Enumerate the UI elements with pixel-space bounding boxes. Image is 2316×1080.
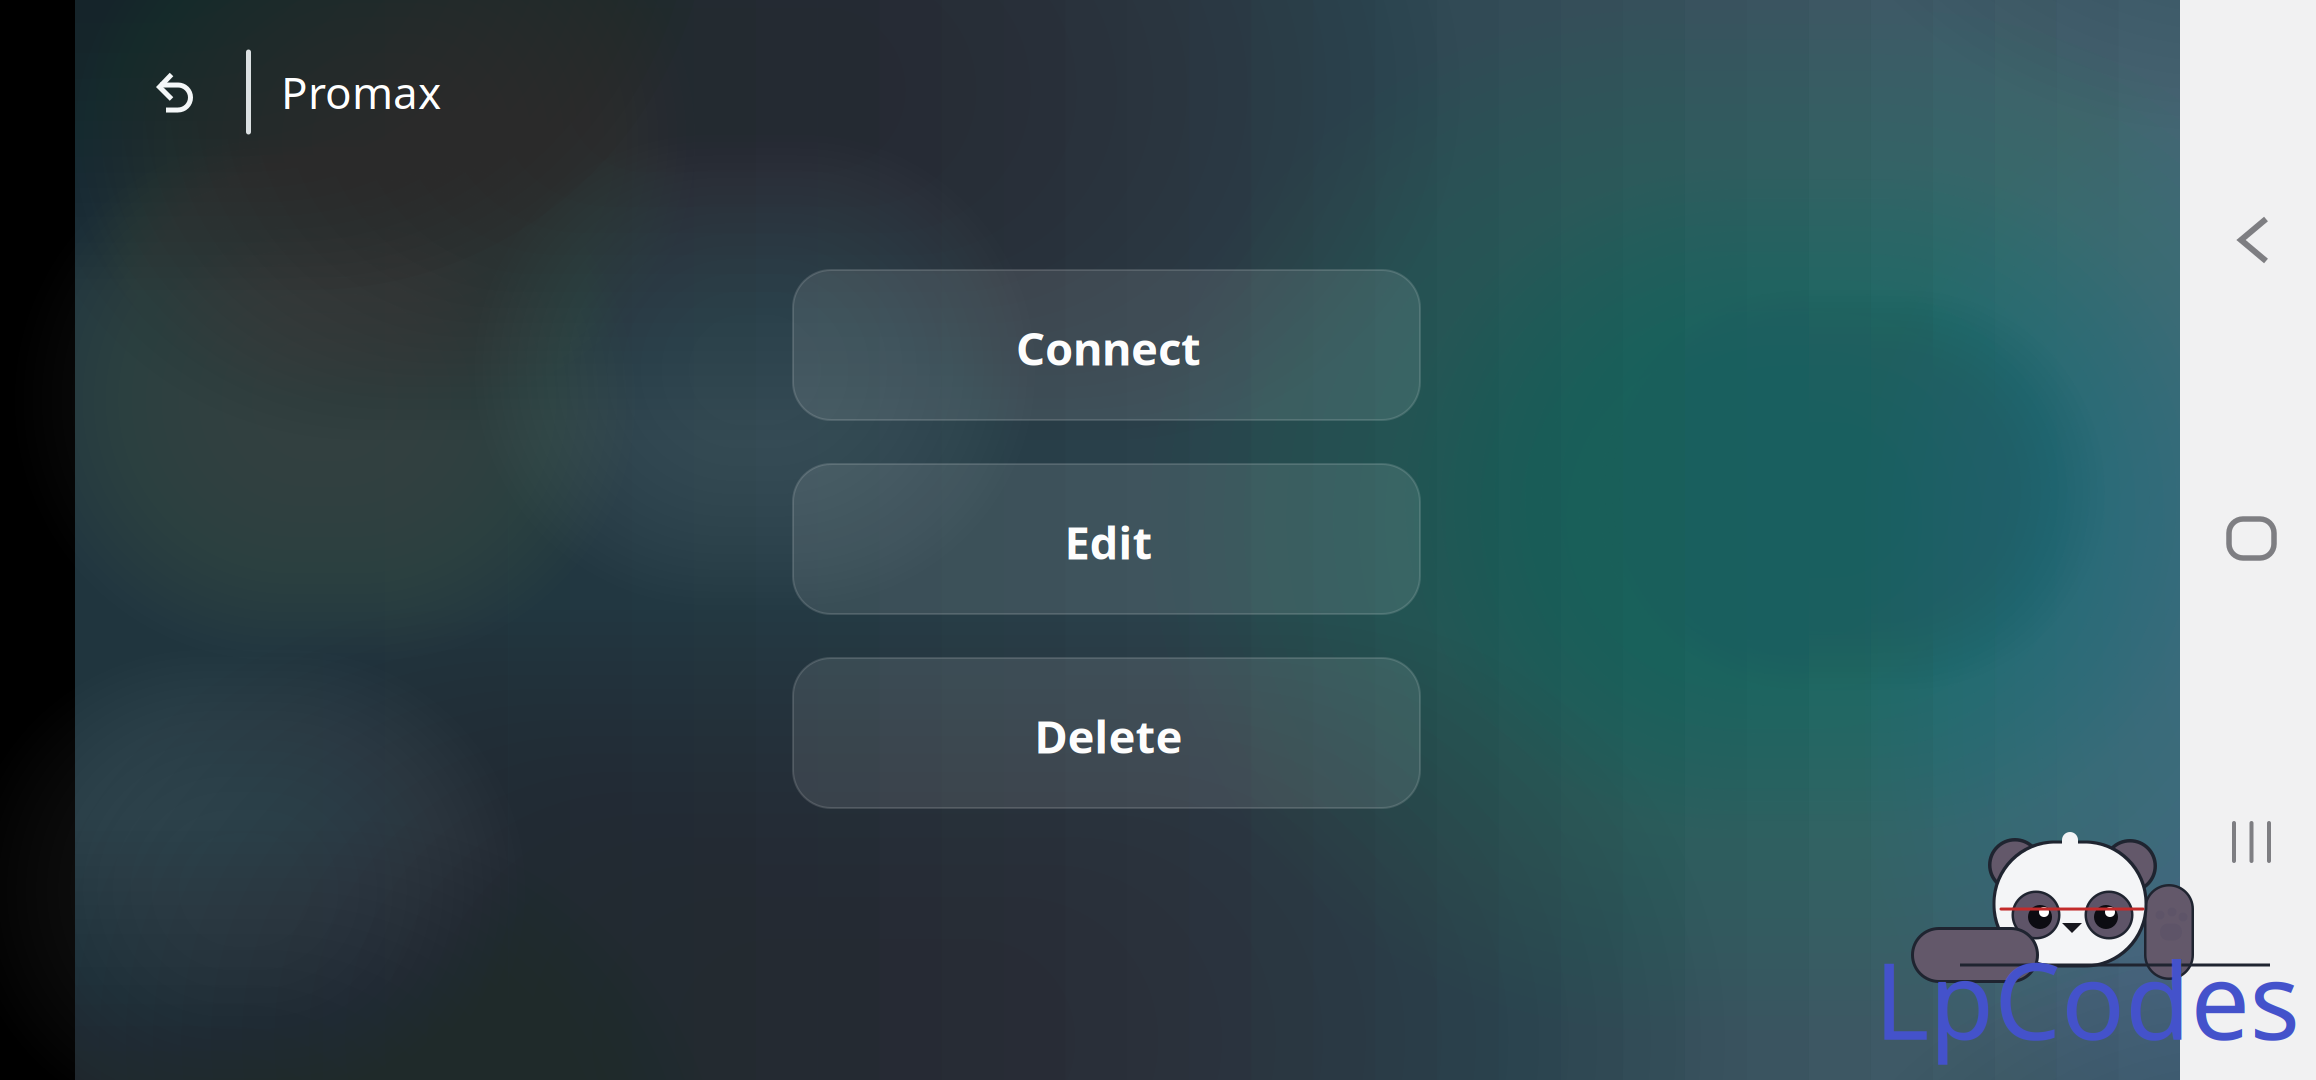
button[interactable]: Delete <box>793 658 1420 808</box>
staticText: Promax <box>281 63 441 121</box>
button[interactable]: Connect <box>793 270 1420 420</box>
button[interactable]: Recent apps <box>2180 805 2316 879</box>
button[interactable]: Back <box>104 44 246 140</box>
staticText: LpCodes <box>1874 929 2299 1069</box>
button[interactable]: Home <box>2180 503 2316 574</box>
staticText: Connect <box>1016 318 1201 378</box>
staticText: Delete <box>1034 706 1182 766</box>
button[interactable]: Back <box>2180 200 2316 280</box>
staticText: Edit <box>1064 512 1152 572</box>
button[interactable]: Edit <box>793 464 1420 614</box>
